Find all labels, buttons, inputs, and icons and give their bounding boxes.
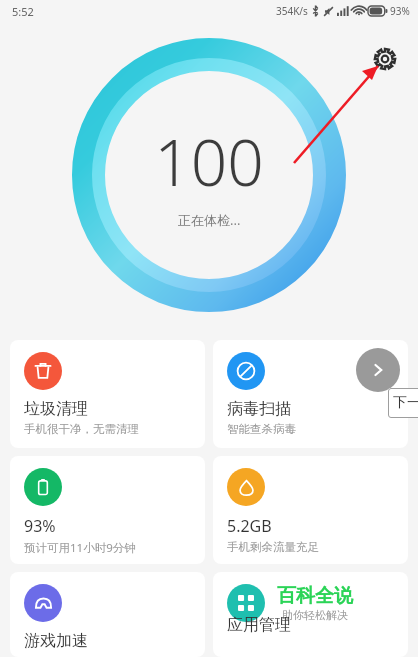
button[interactable]: 5.2GB	[213, 456, 408, 564]
staticText: 游戏加速	[24, 631, 88, 651]
staticText: 应用管理	[227, 615, 291, 635]
staticText: 正在体检...	[178, 211, 241, 229]
staticText: 手机很干净，无需清理	[24, 422, 139, 436]
button[interactable]: 游戏加速	[10, 572, 205, 657]
staticText: 93%	[24, 515, 56, 537]
staticText: 93%	[390, 4, 410, 18]
staticText: 100	[154, 118, 264, 205]
staticText: 5:52	[12, 4, 34, 19]
button[interactable]: 病毒扫描	[213, 340, 408, 448]
staticText: 垃圾清理	[24, 399, 88, 419]
button[interactable]: 下一步	[388, 388, 418, 418]
staticText: 手机剩余流量充足	[227, 540, 319, 554]
staticText: 下一步	[393, 394, 418, 412]
button[interactable]: Next	[356, 348, 400, 392]
button[interactable]: 93%	[10, 456, 205, 564]
staticText: 预计可用11小时9分钟	[24, 540, 136, 556]
staticText: 病毒扫描	[227, 399, 291, 419]
button[interactable]: 百科全说	[213, 572, 408, 657]
button[interactable]: 垃圾清理	[10, 340, 205, 448]
button[interactable]: Settings	[368, 42, 402, 76]
staticText: 百科全说	[277, 584, 353, 608]
staticText: 5.2GB	[227, 515, 272, 537]
staticText: 智能查杀病毒	[227, 422, 296, 436]
staticText: 助你轻松解决	[282, 608, 348, 622]
staticText: 354K/s	[276, 4, 308, 18]
